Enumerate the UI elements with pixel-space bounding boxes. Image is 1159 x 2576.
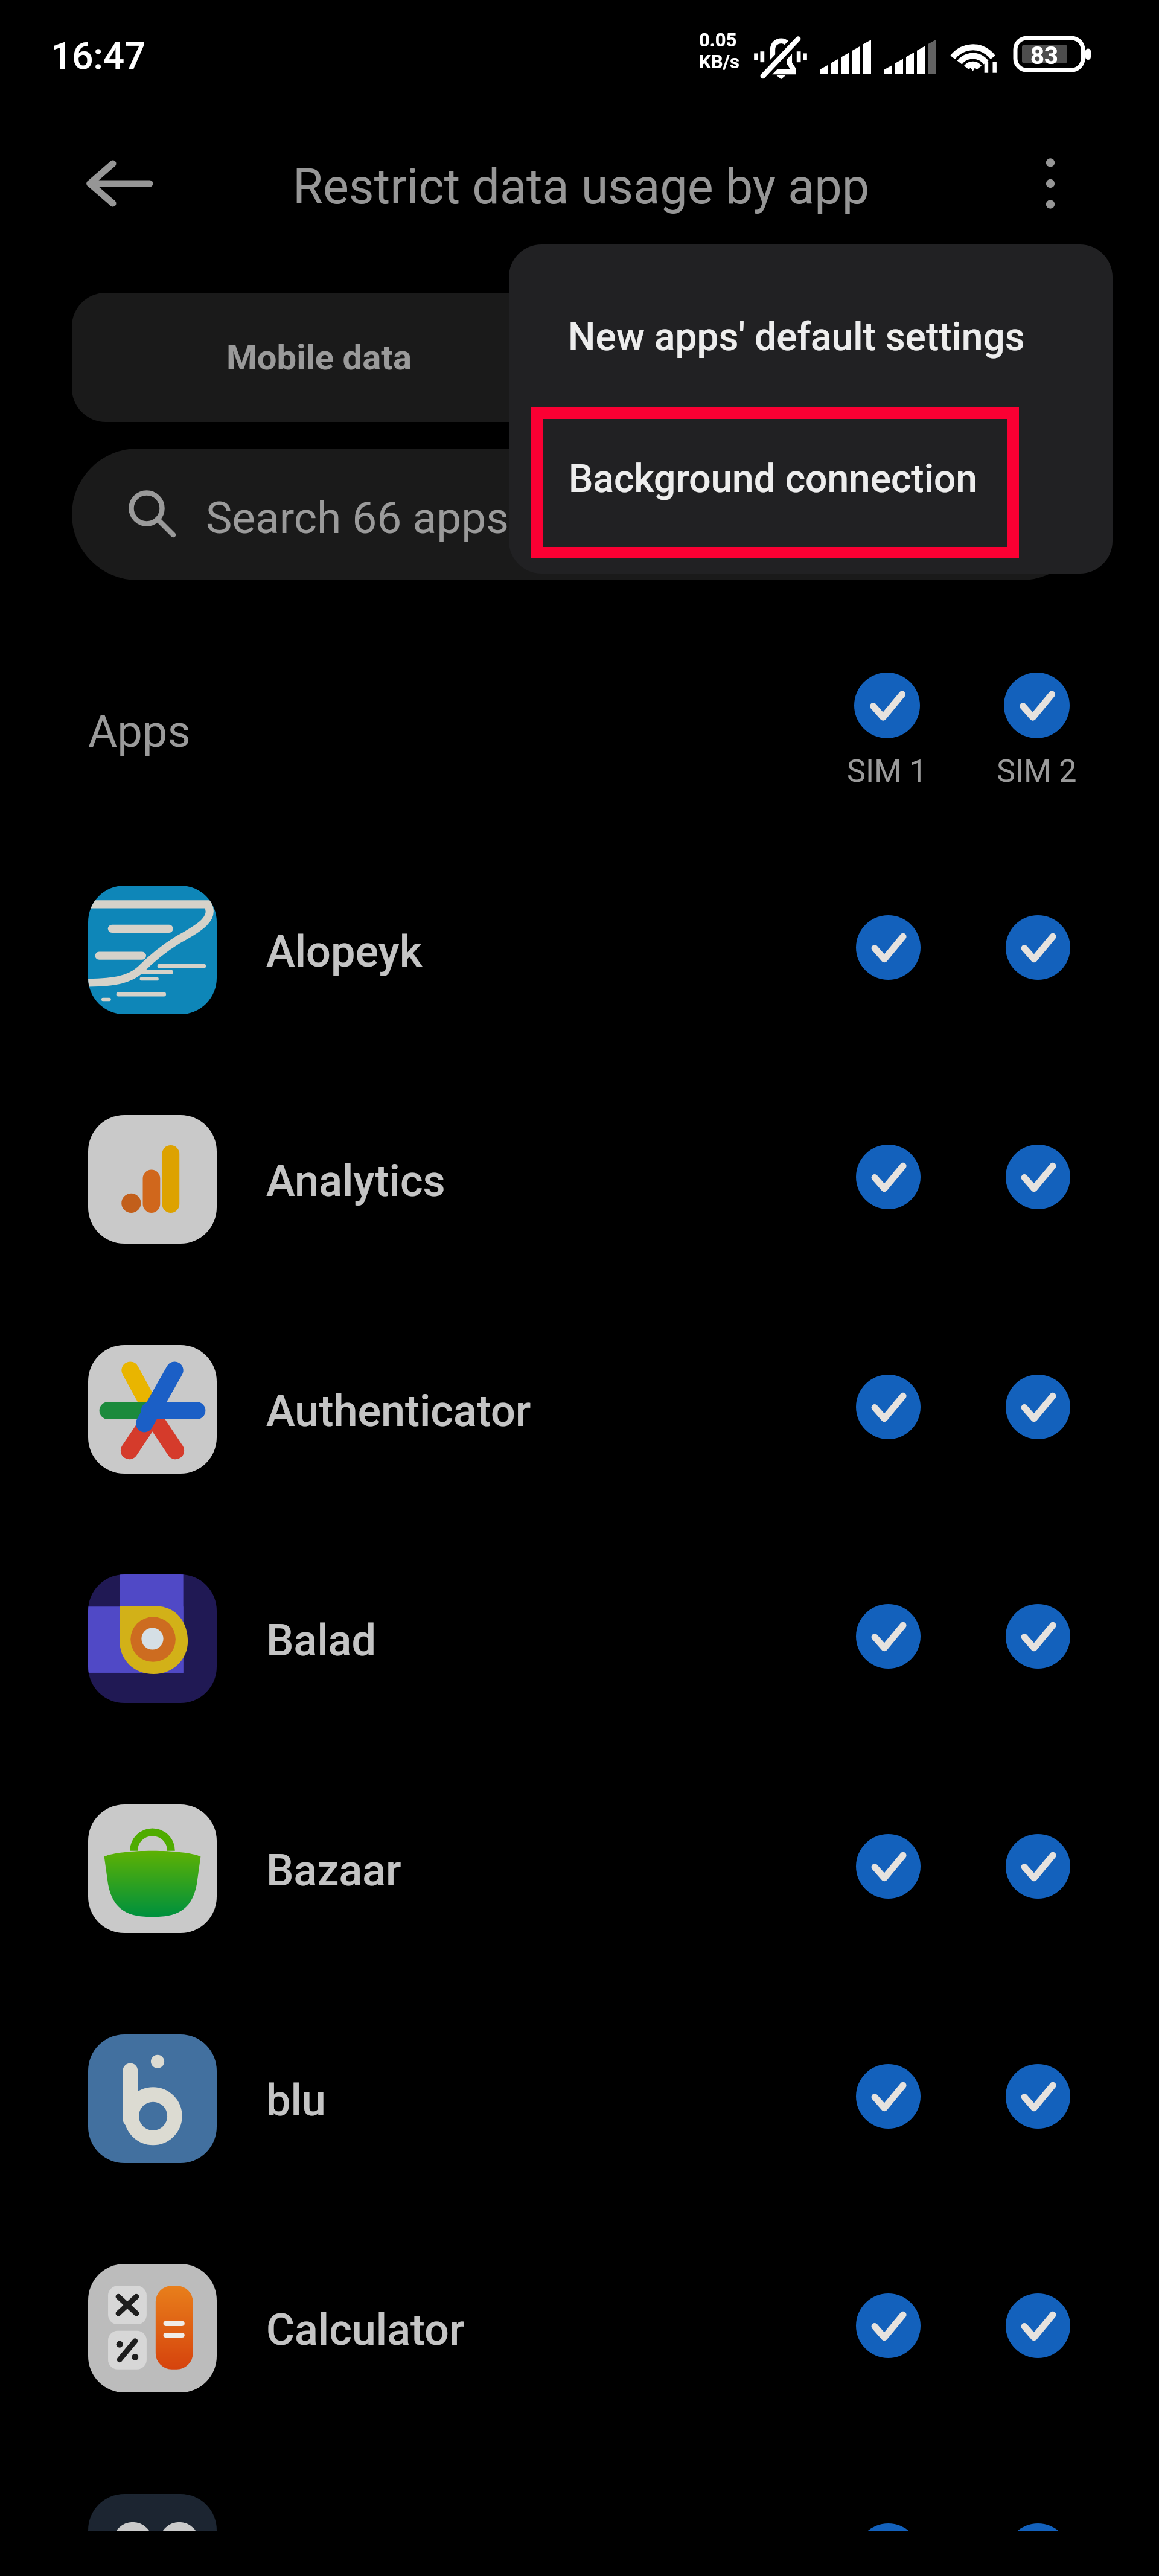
button[interactable]: Analytics	[0, 1065, 1159, 1294]
button[interactable]: Balad	[0, 1524, 1159, 1754]
button[interactable]: Alopeyk SIM 2 enabled	[989, 898, 1087, 997]
button[interactable]: Calculator SIM 2 enabled	[989, 2277, 1087, 2375]
staticText: 83	[1030, 42, 1058, 70]
button[interactable]: blu SIM 2 enabled	[989, 2047, 1087, 2146]
staticText: Authenticator	[266, 1385, 531, 1436]
button[interactable]: Analytics SIM 2 enabled	[989, 1128, 1087, 1226]
button[interactable]: Bazaar SIM 2 enabled	[989, 1817, 1087, 1916]
button[interactable]: More options	[1008, 141, 1093, 226]
button[interactable]: Camera	[0, 2444, 1159, 2531]
button[interactable]: SIM 1	[830, 673, 943, 790]
button[interactable]: Back	[78, 141, 162, 226]
button[interactable]: Camera SIM 1 enabled	[839, 2507, 937, 2531]
button[interactable]: Balad SIM 1 enabled	[839, 1587, 937, 1686]
staticText: New apps' default settings	[568, 315, 1025, 360]
button[interactable]: Alopeyk	[0, 836, 1159, 1065]
button[interactable]: Background connection	[509, 409, 1113, 574]
staticText: Alopeyk	[266, 926, 423, 977]
button[interactable]: Authenticator	[0, 1295, 1159, 1524]
staticText: Balad	[266, 1615, 377, 1666]
staticText: SIM 1	[847, 753, 927, 790]
staticText: 16:47	[51, 34, 146, 78]
button[interactable]: SIM 2	[980, 673, 1093, 790]
staticText: SIM 2	[997, 753, 1077, 790]
button[interactable]: Balad SIM 2 enabled	[989, 1587, 1087, 1686]
staticText: Apps	[88, 705, 191, 758]
staticText: Analytics	[266, 1155, 445, 1206]
button[interactable]: Authenticator SIM 1 enabled	[839, 1358, 937, 1456]
button[interactable]: Bazaar	[0, 1754, 1159, 1984]
staticText: Restrict data usage by app	[293, 158, 870, 216]
button[interactable]: Authenticator SIM 2 enabled	[989, 1358, 1087, 1456]
button[interactable]: Search 66 apps	[72, 449, 1087, 580]
button[interactable]: New apps' default settings	[509, 244, 1113, 409]
staticText: Background connection	[569, 456, 977, 502]
staticText: blu	[266, 2075, 326, 2126]
staticText: Calculator	[266, 2304, 465, 2355]
button[interactable]: Calculator	[0, 2214, 1159, 2443]
button[interactable]: Bazaar SIM 1 enabled	[839, 1817, 937, 1916]
button[interactable]: Camera SIM 2 enabled	[989, 2507, 1087, 2531]
button[interactable]: Alopeyk SIM 1 enabled	[839, 898, 937, 997]
staticText: KB/s	[699, 51, 739, 72]
button[interactable]: Mobile data	[72, 293, 1087, 422]
staticText: Mobile data	[226, 337, 412, 378]
staticText: Bazaar	[266, 1845, 401, 1896]
button[interactable]: blu SIM 1 enabled	[839, 2047, 937, 2146]
button[interactable]: Analytics SIM 1 enabled	[839, 1128, 937, 1226]
button[interactable]: blu	[0, 1984, 1159, 2214]
staticText: 0.05	[699, 29, 737, 51]
staticText: Search 66 apps	[206, 492, 509, 544]
button[interactable]: Calculator SIM 1 enabled	[839, 2277, 937, 2375]
